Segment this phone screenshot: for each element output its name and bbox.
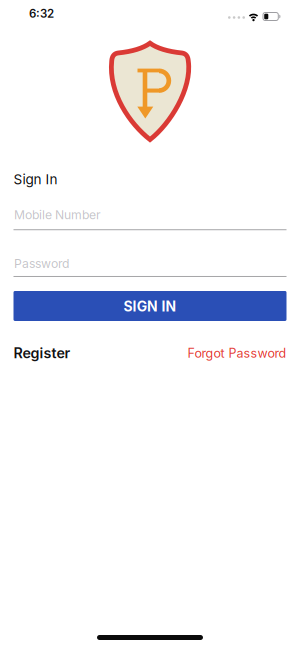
staticText: Mobile Number [14, 207, 101, 222]
staticText: 6:32 [29, 6, 54, 20]
staticText: Register [13, 344, 70, 362]
button[interactable]: Mobile Number [13, 207, 286, 230]
staticText: Sign In [13, 171, 57, 187]
staticText: Password [14, 256, 69, 271]
button[interactable]: Register [13, 344, 70, 362]
button[interactable]: SIGN IN [13, 291, 286, 321]
button[interactable]: Password [13, 256, 286, 277]
staticText: SIGN IN [123, 298, 177, 315]
staticText: Forgot Password [187, 346, 286, 361]
button[interactable]: Forgot Password [187, 346, 286, 361]
